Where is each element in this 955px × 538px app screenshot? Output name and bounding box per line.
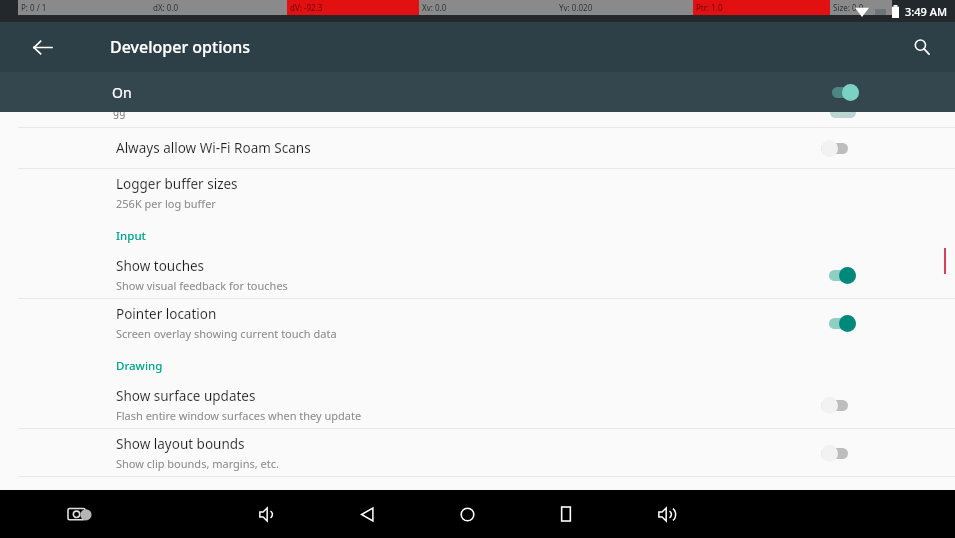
staticText: Show touches	[116, 257, 205, 275]
button[interactable]: Search	[902, 27, 942, 67]
staticText: Input	[116, 228, 147, 244]
button[interactable]: Volume down	[247, 494, 287, 534]
staticText: Developer options	[110, 36, 251, 58]
staticText: Show visual feedback for touches	[116, 278, 288, 293]
button[interactable]: Recents	[546, 494, 586, 534]
button[interactable]: On	[0, 72, 955, 112]
staticText: Show clip bounds, margins, etc.	[116, 456, 279, 471]
button[interactable]: Volume up	[646, 494, 686, 534]
staticText: Yv: 0.020	[559, 2, 593, 13]
staticText: Drawing	[116, 358, 163, 374]
staticText: Ptr: 1.0	[696, 2, 723, 13]
staticText: Logger buffer sizes	[116, 175, 238, 193]
staticText: P: 0 / 1	[21, 2, 47, 13]
staticText: Xv: 0.0	[422, 2, 447, 13]
button[interactable]: gg	[0, 112, 955, 127]
button[interactable]: Always allow Wi-Fi Roam Scans	[0, 128, 955, 168]
staticText: Size: 0.0	[833, 2, 864, 13]
staticText: gg	[113, 105, 126, 119]
button[interactable]: Show touches	[0, 251, 955, 298]
button[interactable]: Pointer location	[0, 299, 955, 346]
staticText: Show surface updates	[116, 387, 256, 405]
staticText: 256K per log buffer	[116, 196, 216, 211]
button[interactable]: Show surface updates	[0, 381, 955, 428]
button[interactable]: Show layout bounds	[0, 429, 955, 476]
staticText: Always allow Wi-Fi Roam Scans	[116, 139, 311, 157]
button[interactable]: Logger buffer sizes	[0, 169, 955, 216]
staticText: dX: 0.0	[153, 2, 179, 13]
staticText: Flash entire window surfaces when they u…	[116, 408, 362, 423]
staticText: Screen overlay showing current touch dat…	[116, 326, 337, 341]
staticText: On	[112, 83, 132, 102]
staticText: Pointer location	[116, 305, 217, 323]
staticText: Show layout bounds	[116, 435, 245, 453]
staticText: dV: -92.3	[290, 2, 323, 13]
button[interactable]: Back	[347, 494, 387, 534]
button[interactable]: Back	[22, 27, 62, 67]
staticText: 3:49 AM	[905, 4, 948, 19]
button[interactable]: Screenshot	[62, 497, 96, 531]
button[interactable]: Home	[447, 494, 487, 534]
